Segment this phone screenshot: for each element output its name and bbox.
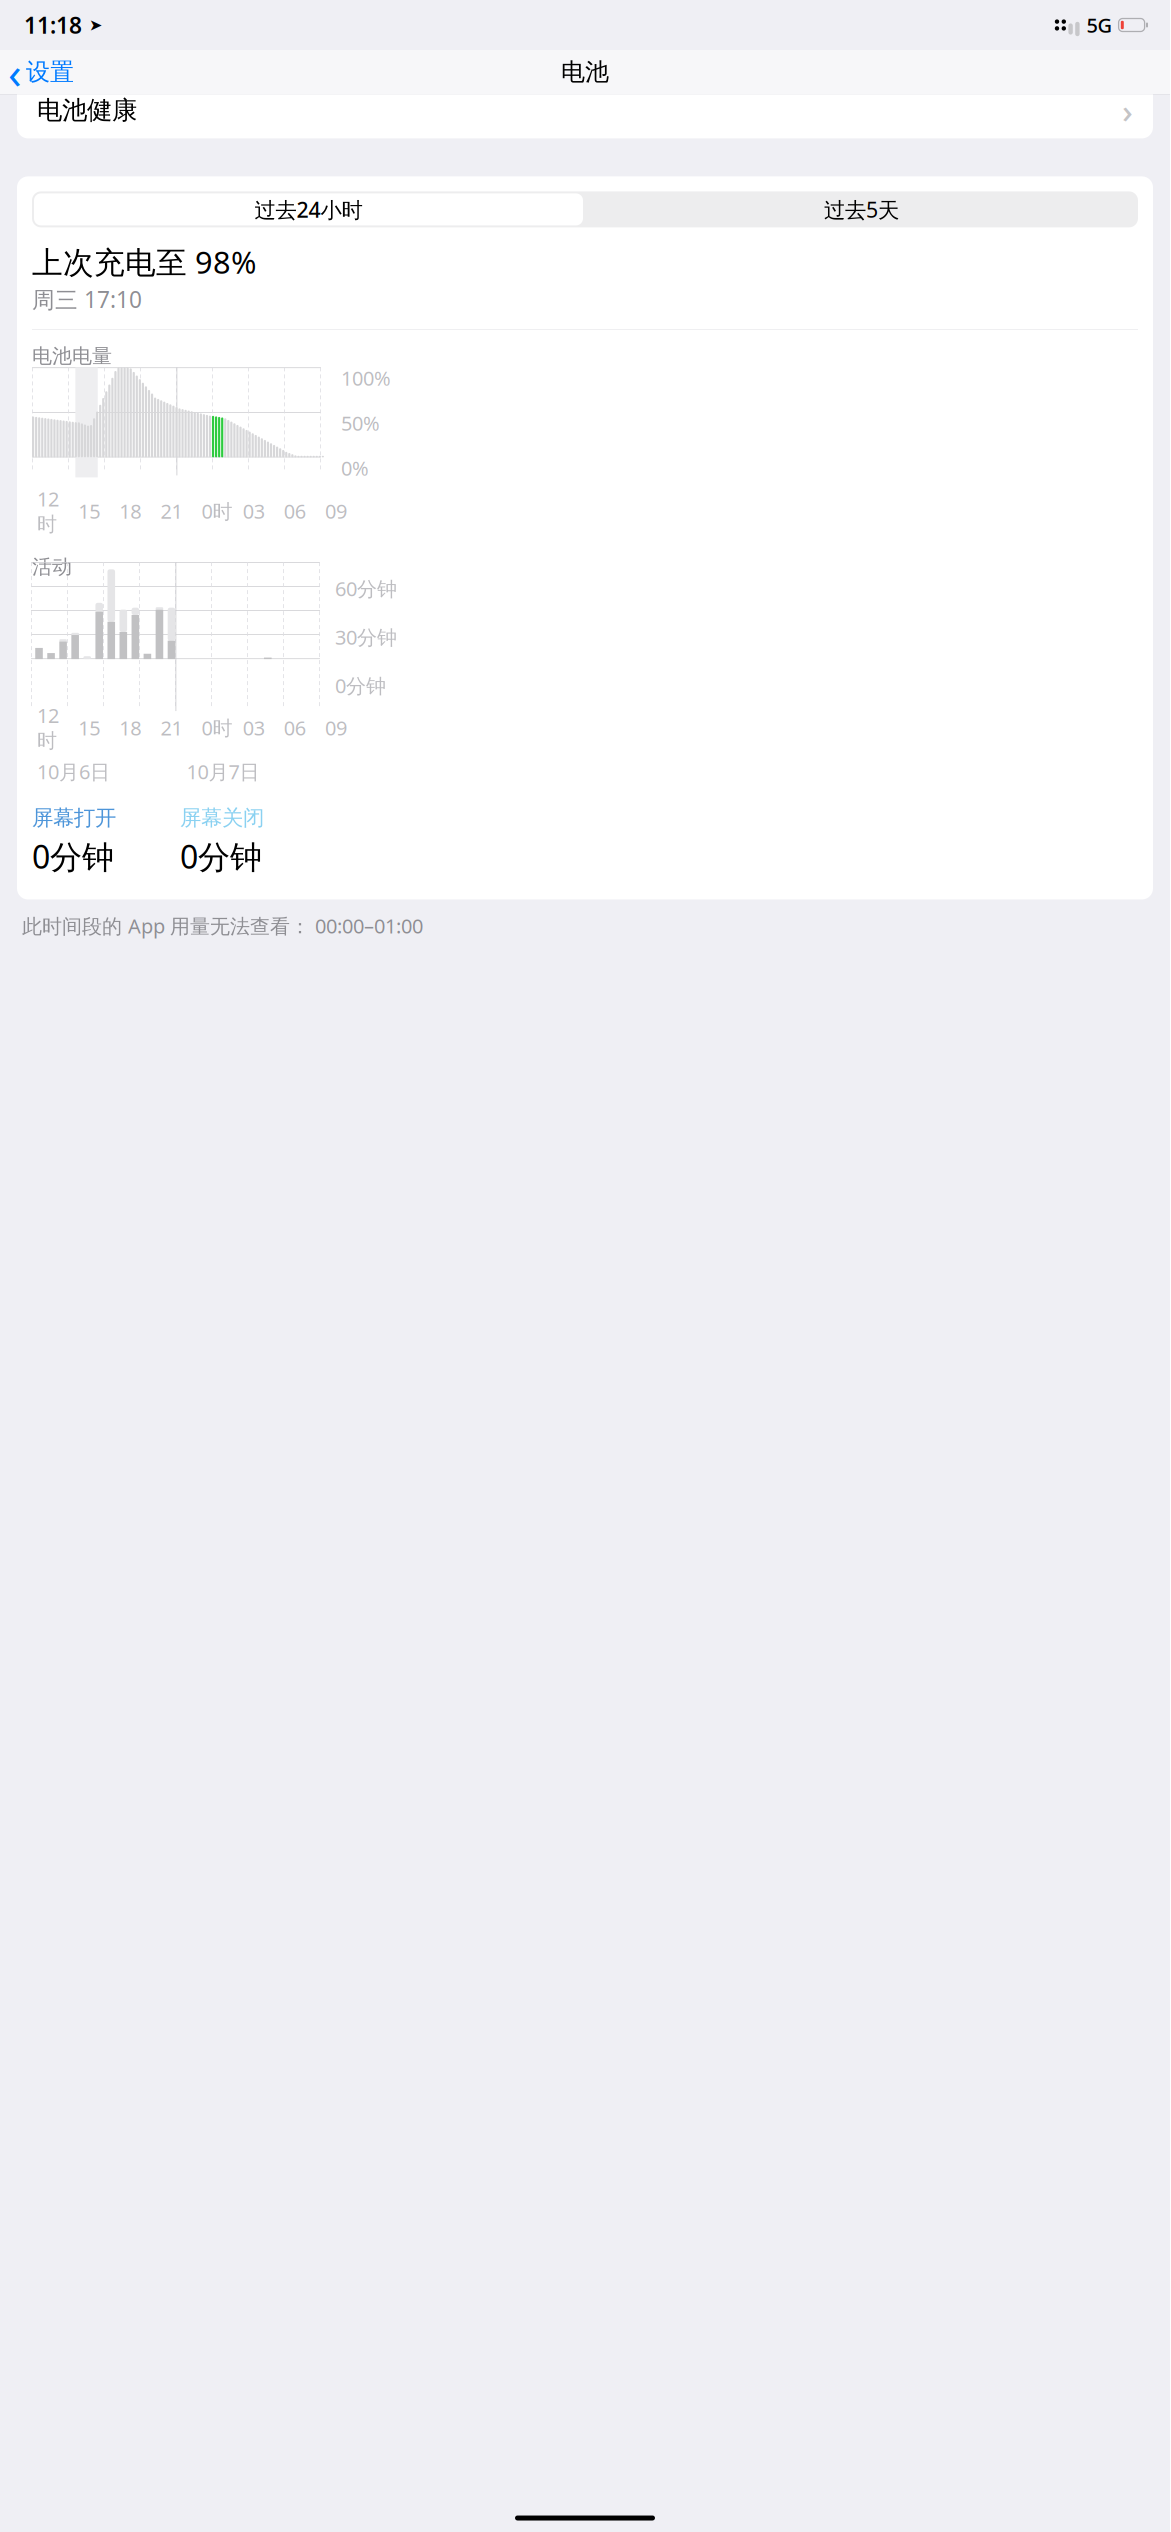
staticText: 12时 — [37, 702, 59, 753]
staticText: 屏幕关闭 — [180, 805, 264, 831]
staticText: 电池电量 — [32, 344, 112, 368]
staticText: 11:18 — [24, 10, 82, 40]
staticText: ➤ — [89, 16, 102, 34]
staticText: 12时 — [37, 485, 59, 536]
staticText: 5G — [1087, 12, 1113, 38]
staticText: 21 — [160, 714, 182, 741]
staticText: 活动 — [32, 554, 72, 579]
staticText: 50% — [341, 410, 380, 436]
staticText: 此时间段的 App 用量无法查看： 00:00–01:00 — [22, 912, 423, 939]
staticText: 03 — [243, 498, 265, 524]
staticText: 09 — [325, 714, 347, 741]
staticText: 30分钟 — [335, 624, 397, 650]
staticText: 0时 — [201, 498, 232, 524]
staticText: 10月6日 — [37, 758, 110, 785]
staticText: ‹ — [8, 43, 22, 101]
staticText: 03 — [243, 714, 265, 741]
staticText: › — [1122, 88, 1133, 133]
staticText: 0% — [341, 455, 369, 481]
staticText: 06 — [284, 498, 306, 524]
staticText: 15 — [78, 714, 100, 741]
staticText: 18 — [119, 714, 141, 741]
staticText: 10月7日 — [186, 758, 259, 785]
staticText: 屏幕打开 — [32, 805, 116, 831]
staticText: 100% — [341, 365, 391, 391]
staticText: 过去5天 — [824, 195, 899, 223]
staticText: 电池健康 — [37, 95, 137, 126]
button[interactable]: 过去24小时 — [32, 191, 585, 227]
staticText: 0分钟 — [335, 672, 386, 699]
staticText: 18 — [119, 498, 141, 524]
button[interactable]: 过去5天 — [585, 191, 1138, 227]
staticText: 电池 — [561, 57, 609, 87]
staticText: 09 — [325, 498, 347, 524]
staticText: 0时 — [201, 714, 232, 741]
staticText: 60分钟 — [335, 575, 397, 602]
staticText: 周三 17:10 — [32, 284, 142, 314]
staticText: 上次充电至 98% — [32, 241, 256, 282]
button[interactable]: ‹ — [0, 50, 84, 94]
staticText: 过去24小时 — [254, 195, 362, 223]
staticText: 06 — [284, 714, 306, 741]
staticText: 0分钟 — [180, 835, 262, 877]
staticText: 21 — [160, 498, 182, 524]
staticText: 设置 — [26, 57, 74, 87]
staticText: 0分钟 — [32, 835, 114, 877]
button[interactable]: 电池健康 — [17, 82, 1153, 138]
staticText: 15 — [78, 498, 100, 524]
